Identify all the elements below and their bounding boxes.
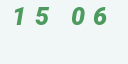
staticText: 6 — [93, 2, 108, 31]
staticText: 0 — [71, 2, 86, 31]
staticText: 1 — [12, 2, 27, 31]
staticText: 5 — [35, 2, 50, 31]
